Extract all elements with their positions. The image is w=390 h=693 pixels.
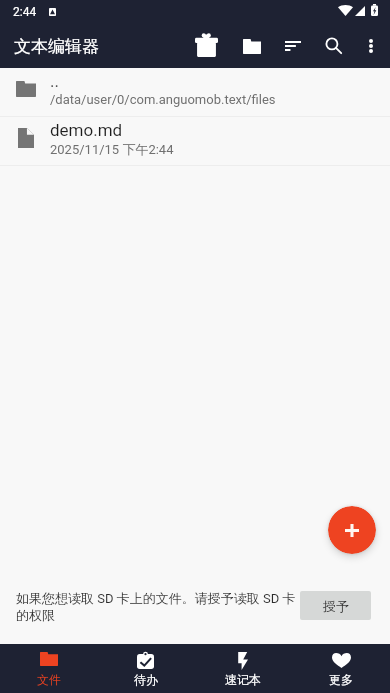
staticText: demo.md — [50, 120, 123, 140]
staticText: 待办 — [134, 672, 158, 687]
button[interactable]: Folder — [230, 24, 274, 68]
button[interactable]: .. — [0, 68, 390, 117]
button[interactable]: Search — [312, 24, 356, 68]
button[interactable]: 更多 — [292, 644, 390, 693]
button[interactable]: New file — [328, 506, 376, 554]
button[interactable]: Gift — [184, 24, 228, 68]
staticText: 文本编辑器 — [14, 36, 99, 57]
staticText: 如果您想读取 SD 卡上的文件。请授予读取 SD 卡的权限 — [16, 590, 298, 624]
staticText: .. — [50, 71, 59, 91]
button[interactable]: More options — [349, 24, 390, 68]
button[interactable]: 授予 — [300, 591, 371, 620]
staticText: 速记本 — [225, 672, 261, 687]
button[interactable]: 待办 — [97, 644, 194, 693]
staticText: /data/user/0/com.anguomob.text/files — [50, 92, 276, 107]
staticText: 授予 — [323, 598, 349, 614]
button[interactable]: Sort — [271, 24, 315, 68]
staticText: 更多 — [329, 672, 353, 687]
button[interactable]: demo.md — [0, 117, 390, 166]
staticText: 文件 — [37, 672, 61, 687]
staticText: 2:44 — [13, 5, 37, 19]
staticText: 2025/11/15 下午2:44 — [50, 141, 174, 157]
button[interactable]: 文件 — [0, 644, 97, 693]
button[interactable]: 速记本 — [194, 644, 292, 693]
